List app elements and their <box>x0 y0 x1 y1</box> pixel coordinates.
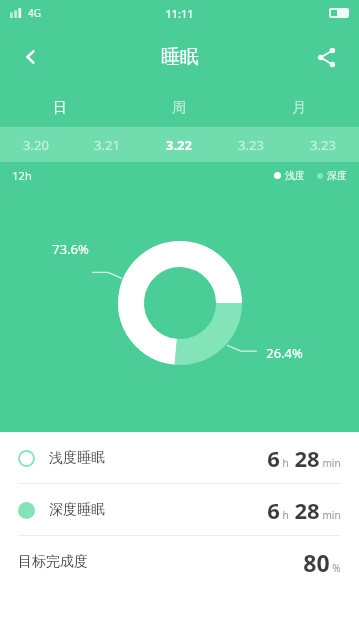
button[interactable]: Back <box>8 34 54 80</box>
staticText: 11:11 <box>165 6 194 21</box>
button[interactable]: 深度睡眠 <box>0 484 359 535</box>
staticText: 3.22 <box>166 136 192 154</box>
staticText: 周 <box>172 99 186 117</box>
staticText: 3.23 <box>238 136 264 154</box>
staticText: h <box>282 508 289 522</box>
staticText: 3.23 <box>310 136 336 154</box>
staticText: 28 <box>294 495 320 525</box>
staticText: 浅度睡眠 <box>49 449 105 467</box>
staticText: min <box>322 508 341 522</box>
button[interactable]: 日 <box>0 88 119 127</box>
button[interactable]: 月 <box>239 88 359 127</box>
button[interactable]: 目标完成度 <box>0 536 359 588</box>
staticText: 月 <box>292 99 306 117</box>
staticText: 睡眠 <box>161 45 199 69</box>
staticText: 6 <box>267 443 280 473</box>
staticText: 3.21 <box>94 136 120 154</box>
staticText: 73.6% <box>52 240 89 258</box>
button[interactable]: 浅度睡眠 <box>0 432 359 483</box>
staticText: 浅度 <box>285 169 305 182</box>
button[interactable]: 3.20 <box>0 127 71 162</box>
button[interactable]: 3.22 <box>143 127 215 162</box>
staticText: 26.4% <box>266 344 303 362</box>
staticText: 4G <box>28 6 41 20</box>
staticText: 12h <box>12 168 32 183</box>
button[interactable]: Share <box>303 34 349 80</box>
staticText: 深度 <box>327 169 347 182</box>
staticText: 日 <box>53 99 67 117</box>
staticText: % <box>332 561 341 575</box>
staticText: 深度睡眠 <box>49 501 105 519</box>
staticText: h <box>282 456 289 470</box>
button[interactable]: 3.21 <box>71 127 143 162</box>
staticText: min <box>322 456 341 470</box>
button[interactable]: 3.23 <box>287 127 359 162</box>
staticText: 80 <box>303 547 330 578</box>
staticText: 28 <box>294 443 320 473</box>
staticText: 6 <box>267 495 280 525</box>
staticText: 目标完成度 <box>18 553 88 571</box>
button[interactable]: 周 <box>119 88 239 127</box>
button[interactable]: 3.23 <box>215 127 287 162</box>
staticText: 3.20 <box>23 136 49 154</box>
